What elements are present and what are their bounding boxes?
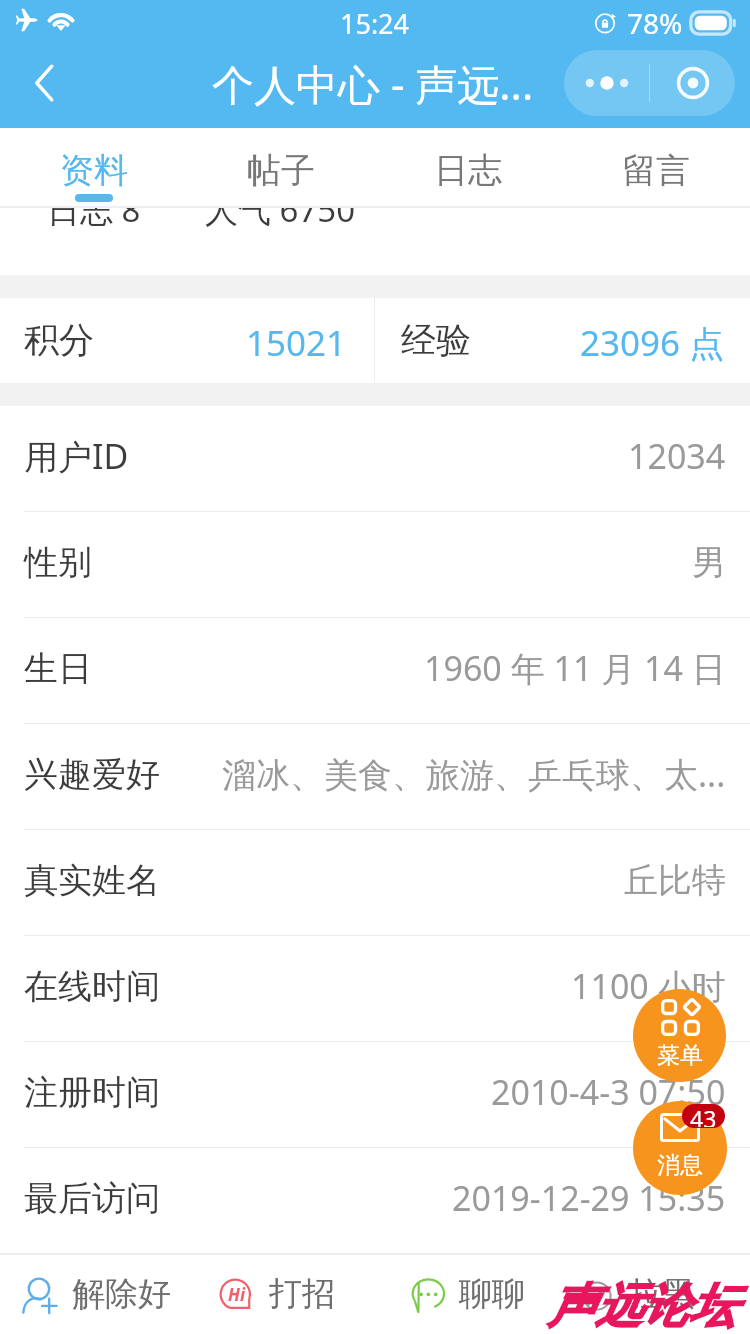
staticText: 15:24 [340, 5, 410, 42]
staticText: 用户ID [24, 433, 129, 479]
staticText: 15021 [246, 319, 347, 367]
button[interactable]: 菜单 [633, 989, 726, 1082]
button[interactable]: 拉黑 [580, 1253, 695, 1334]
staticText: 23096 点 [580, 319, 725, 367]
staticText: 12034 [628, 433, 726, 479]
staticText: 留言 [622, 149, 690, 192]
button[interactable]: 积分 [0, 298, 374, 383]
staticText: 个人中心 - 声远... [212, 55, 534, 112]
staticText: 日志 [434, 149, 502, 192]
staticText: 资料 [60, 149, 128, 192]
button[interactable]: 消息 [633, 1101, 727, 1195]
staticText: 2019-12-29 15:35 [452, 1175, 726, 1221]
staticText: 1100 小时 [571, 963, 726, 1009]
button[interactable]: Hi [220, 1253, 335, 1334]
staticText: 人气 6750 [205, 187, 356, 232]
staticText: 聊聊 [459, 1273, 525, 1315]
staticText: 2010-4-3 07:50 [491, 1069, 726, 1115]
staticText: 消息 [657, 1151, 703, 1180]
staticText: 男 [692, 541, 726, 584]
staticText: 1960 年 11 月 14 日 [424, 645, 726, 691]
staticText: 在线时间 [24, 965, 160, 1008]
staticText: 打招 [269, 1273, 335, 1315]
button[interactable]: 聊聊 [410, 1253, 525, 1334]
staticText: 78% [627, 4, 683, 42]
other: 43 unread messages [682, 1104, 725, 1128]
button[interactable]: 经验 [375, 298, 750, 383]
staticText: 丘比特 [624, 859, 726, 902]
staticText: 注册时间 [24, 1071, 160, 1114]
staticText: 生日 [24, 647, 92, 690]
button[interactable]: 真实姓名 [0, 830, 750, 936]
button[interactable]: More options [564, 50, 649, 116]
staticText: 声远论坛 [548, 1277, 736, 1334]
button[interactable]: 帖子 [187, 128, 374, 208]
staticText: 菜单 [657, 1041, 703, 1070]
staticText: 解除好 [72, 1273, 171, 1315]
staticText: 溜冰、美食、旅游、乒乓球、太... [222, 751, 726, 797]
button[interactable]: 留言 [562, 128, 750, 208]
button[interactable]: 资料 [0, 128, 187, 208]
staticText: 拉黑 [629, 1273, 695, 1315]
staticText: 最后访问 [24, 1177, 160, 1220]
staticText: 兴趣爱好 [24, 753, 160, 796]
button[interactable]: Close [650, 50, 735, 116]
button[interactable]: 性别 [0, 512, 750, 618]
staticText: 日志 8 [47, 187, 141, 232]
staticText: 43 [690, 1104, 717, 1127]
button[interactable]: 生日 [0, 618, 750, 724]
staticText: 性别 [24, 541, 92, 584]
button[interactable]: Back [5, 44, 83, 122]
staticText: 经验 [401, 318, 471, 362]
button[interactable]: 日志 [374, 128, 562, 208]
button[interactable]: 在线时间 [0, 936, 750, 1042]
staticText: 真实姓名 [24, 859, 160, 902]
staticText: Hi [228, 1283, 245, 1306]
button[interactable]: 解除好 [23, 1253, 171, 1334]
staticText: 帖子 [247, 149, 315, 192]
button[interactable]: 最后访问 [0, 1148, 750, 1254]
button[interactable]: 用户ID [0, 406, 750, 512]
button[interactable]: 兴趣爱好 [0, 724, 750, 830]
button[interactable]: 注册时间 [0, 1042, 750, 1148]
staticText: 积分 [24, 318, 94, 362]
